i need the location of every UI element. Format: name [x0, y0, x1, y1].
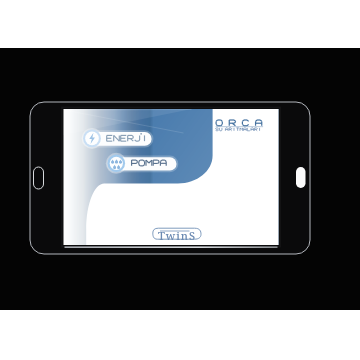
staticText: TwinS: [158, 228, 196, 243]
button[interactable]: POMPA: [107, 154, 177, 174]
button[interactable]: ENERJI: [83, 129, 152, 149]
